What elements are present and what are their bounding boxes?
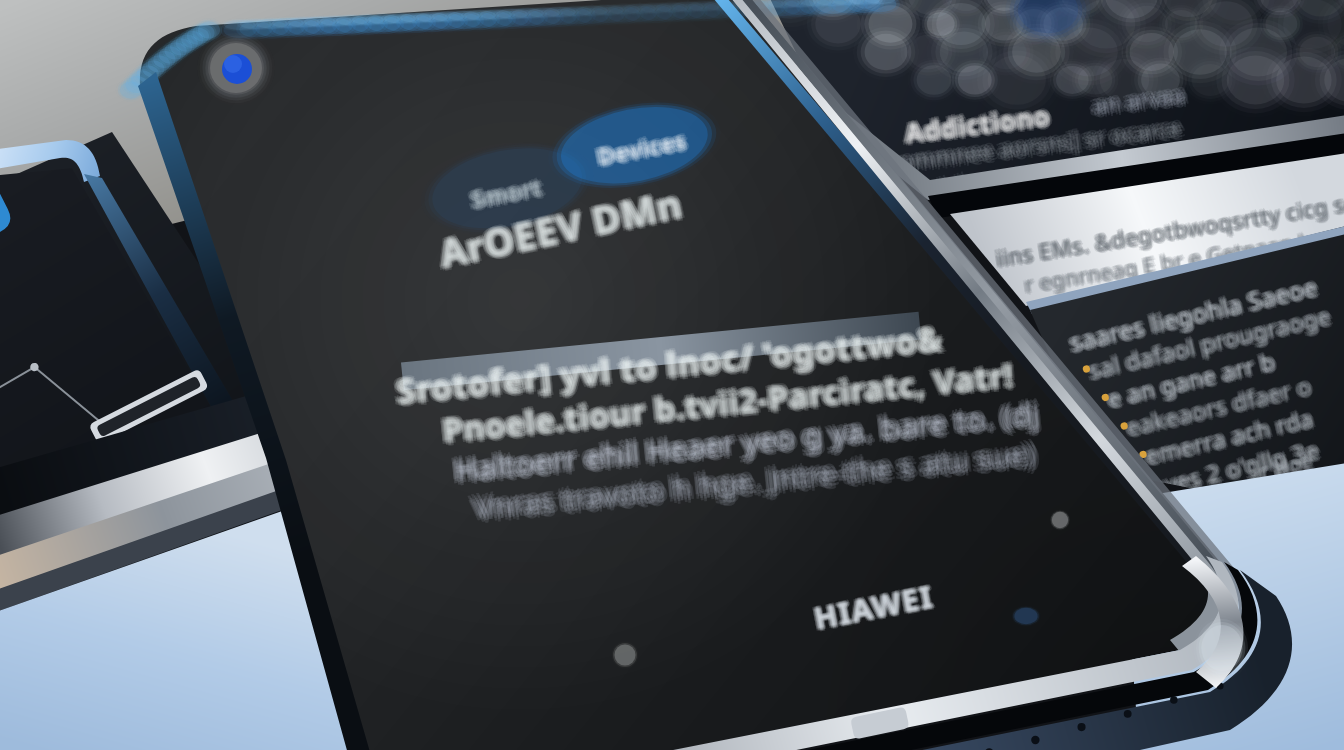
button[interactable]: Devices	[568, 123, 714, 193]
button[interactable]: Camera	[208, 40, 266, 98]
button[interactable]: Smart	[433, 139, 583, 213]
